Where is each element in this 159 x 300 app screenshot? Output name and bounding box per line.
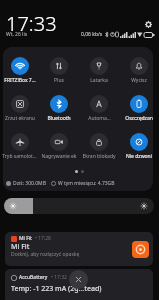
staticText: Mi Fit [19, 235, 32, 242]
button[interactable]: Automa… [79, 91, 119, 129]
staticText: Tryb samolot… [2, 153, 37, 160]
staticText: AccuBattery [19, 274, 48, 281]
staticText: Oszczędzan [125, 115, 153, 122]
button[interactable]: Tryb samolot… [0, 129, 39, 167]
staticText: 17:33 [6, 10, 57, 37]
staticText: Mi Fit [11, 242, 30, 252]
staticText: W tym miesiącu: 4.73GB [58, 180, 115, 187]
button[interactable]: Nagrywanie ek [39, 129, 79, 167]
button[interactable]: AccuBattery [5, 269, 153, 300]
staticText: Wycisz [131, 77, 147, 84]
button[interactable]: Ekran blokady [79, 129, 119, 167]
staticText: Zrzut ekranu [5, 115, 35, 122]
button[interactable]: Oszczędzan [119, 91, 159, 129]
button[interactable]: Mi Fit [5, 232, 153, 266]
button[interactable]: Clear all notifications [69, 270, 88, 289]
staticText: Plus [54, 77, 64, 84]
button[interactable]: Nie dzwoni [119, 129, 159, 167]
button[interactable]: Settings [142, 18, 155, 31]
button[interactable]: Brightness [4, 198, 154, 214]
staticText: Ekran blokady [82, 153, 116, 160]
staticText: Dziś: 300.0MB [13, 180, 46, 187]
staticText: Wt, 26 lis [6, 31, 28, 38]
button[interactable]: Wycisz [119, 53, 159, 91]
staticText: • 17:32 [51, 274, 67, 281]
staticText: Temp: -1 223 mA (2g…tead) [11, 284, 102, 294]
staticText: Nagrywanie ek [41, 153, 77, 160]
staticText: • 17:28 [35, 235, 51, 242]
button[interactable]: Bluetooth [39, 91, 79, 129]
button[interactable]: Zrzut ekranu [0, 91, 39, 129]
staticText: Latarka [90, 77, 108, 84]
staticText: 0,06 kb/s [81, 31, 103, 38]
staticText: Automa… [88, 115, 111, 122]
staticText: Nie dzwoni [126, 153, 152, 160]
staticText: Bluetooth [47, 115, 71, 122]
button[interactable]: FRITZ!Box 7… [0, 53, 39, 91]
staticText: FRITZ!Box 7… [4, 77, 36, 84]
button[interactable]: Latarka [79, 53, 119, 91]
button[interactable]: Plus [39, 53, 79, 91]
staticText: Dotknij, aby rozłączyć opaskę [11, 251, 80, 258]
